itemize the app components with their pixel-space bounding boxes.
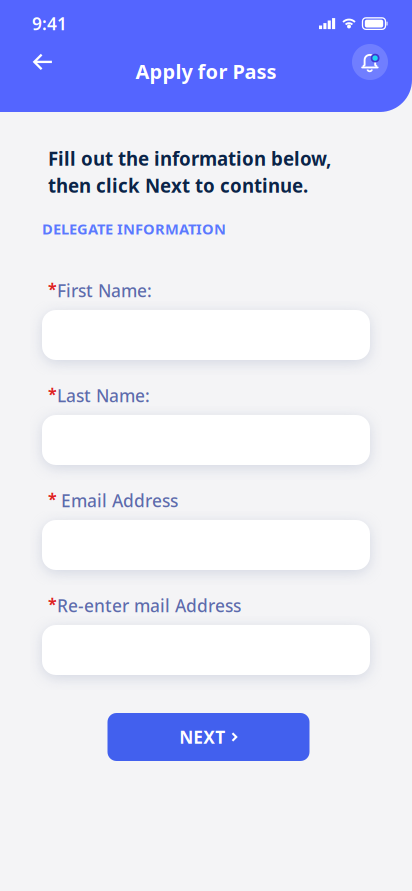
staticText: * xyxy=(48,278,57,299)
staticText: * xyxy=(48,593,57,614)
staticText: NEXT xyxy=(179,725,225,748)
button[interactable]: Notifications xyxy=(352,44,388,80)
staticText: * xyxy=(48,488,61,509)
staticText: First Name: xyxy=(57,279,152,302)
staticText: then click Next to continue. xyxy=(48,173,308,198)
staticText: * xyxy=(48,383,57,404)
staticText: Last Name: xyxy=(57,384,150,407)
staticText: 9:41 xyxy=(32,12,67,35)
staticText: DELEGATE INFORMATION xyxy=(42,219,226,238)
staticText: Re-enter mail Address xyxy=(57,594,241,617)
staticText: Email Address xyxy=(61,489,178,512)
button[interactable]: NEXT xyxy=(107,713,309,761)
staticText: Apply for Pass xyxy=(135,58,276,85)
button[interactable]: Back xyxy=(22,41,64,83)
staticText: Fill out the information below, xyxy=(48,146,331,171)
